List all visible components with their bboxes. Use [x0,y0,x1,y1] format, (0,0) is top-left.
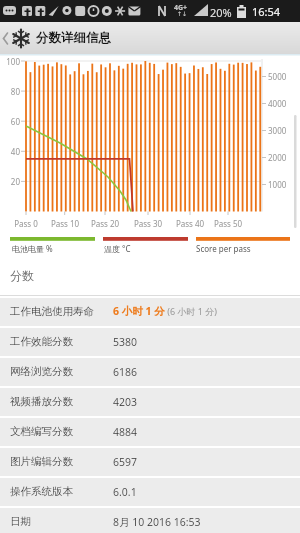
staticText: Score per pass [196,243,251,254]
staticText: 4G+ [174,3,188,13]
button[interactable]: 工作效能分数 [0,328,300,356]
button[interactable]: 图片编辑分数 [0,448,300,476]
staticText: 80 [0,86,20,97]
staticText: 6597 [113,455,138,469]
button[interactable]: 分数详细信息 [0,22,300,54]
staticText: 分数详细信息 [36,30,111,46]
staticText: 6.0.1 [113,485,137,499]
button[interactable]: 日期 [0,508,300,533]
staticText: (6 小时 1 分) [165,305,218,317]
staticText: 日期 [10,515,31,528]
staticText: 网络浏览分数 [10,365,73,378]
staticText: 工作效能分数 [10,335,73,348]
staticText: 20 [0,176,20,187]
button[interactable]: 视频播放分数 [0,388,300,416]
staticText: 4203 [113,395,138,409]
staticText: 60 [0,116,20,127]
staticText: Pass 20 [85,218,125,229]
staticText: 操作系统版本 [10,485,73,498]
staticText: 6186 [113,365,138,379]
staticText: Pass 0 [6,218,46,229]
staticText: Pass 10 [45,218,85,229]
staticText: 3000 [268,125,287,136]
staticText: 4000 [268,98,287,109]
button[interactable]: 操作系统版本 [0,478,300,506]
staticText: 20% [210,5,232,20]
staticText: 2000 [268,152,287,163]
staticText: 文档编写分数 [10,425,73,438]
staticText: 4884 [113,425,138,439]
staticText: 电池电量 % [12,243,53,254]
staticText: 100 [0,56,20,67]
staticText: 5380 [113,335,138,349]
staticText: Pass 50 [208,218,248,229]
staticText: 工作电池使用寿命 [10,305,94,318]
staticText: 8月 10 2016 16:53 [113,515,201,529]
staticText: 温度 °C [104,243,131,254]
staticText: 5000 [268,71,287,82]
staticText: 1000 [268,179,287,190]
staticText: 分数 [10,268,34,283]
staticText: ↑↓ [177,10,188,17]
button[interactable]: 网络浏览分数 [0,358,300,386]
staticText: Pass 40 [170,218,210,229]
button[interactable]: 工作电池使用寿命 [0,298,300,326]
staticText: 6 小时 1 分 [113,304,165,318]
button[interactable]: 文档编写分数 [0,418,300,446]
staticText: 16:54 [252,4,281,19]
staticText: 图片编辑分数 [10,455,73,468]
staticText: 40 [0,146,20,157]
staticText: Pass 30 [128,218,168,229]
staticText: 视频播放分数 [10,395,73,408]
